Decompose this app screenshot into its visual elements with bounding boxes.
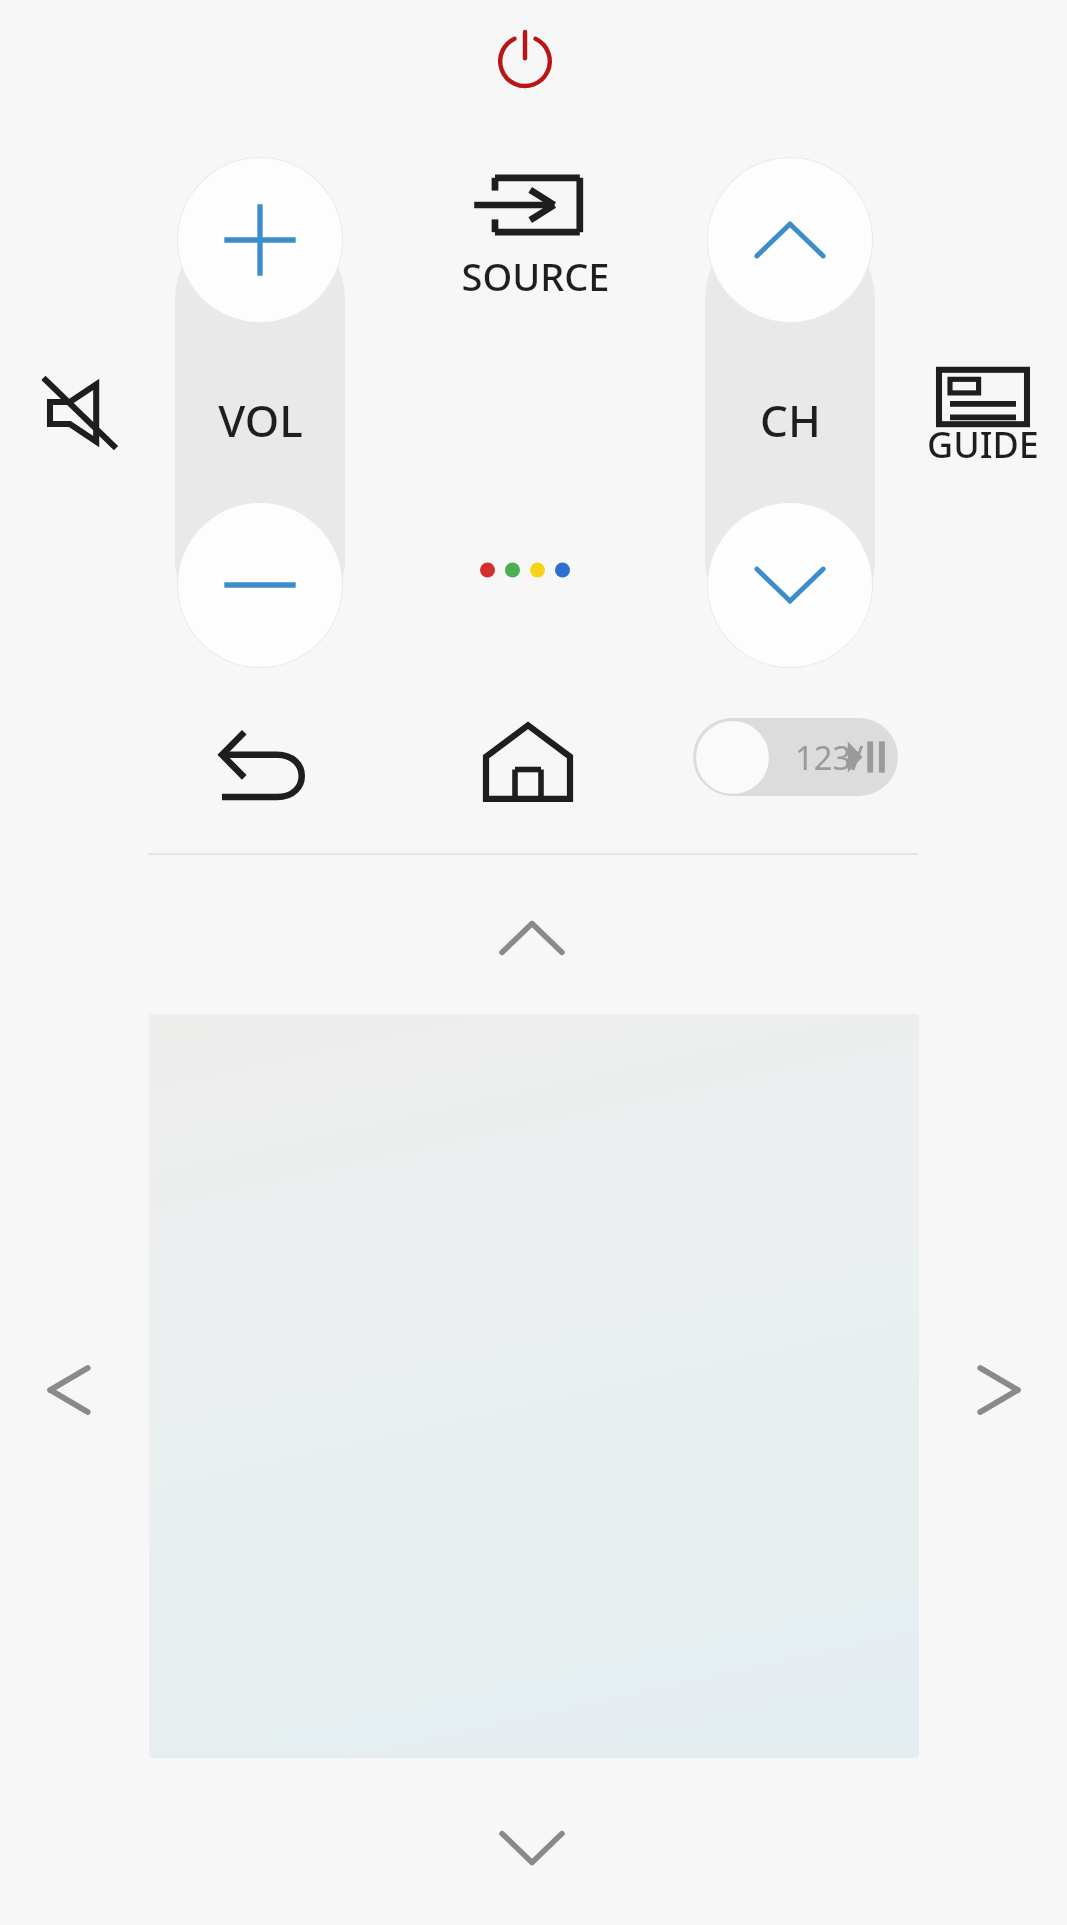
button[interactable]: Power: [465, 18, 585, 98]
button[interactable]: Guide: [928, 363, 1038, 431]
button[interactable]: Expand up: [482, 905, 582, 971]
button[interactable]: Channel up: [707, 157, 873, 323]
staticText: 123/: [795, 735, 864, 780]
staticText: CH: [760, 390, 821, 450]
staticText: VOL: [218, 390, 303, 450]
button[interactable]: Back: [215, 718, 315, 810]
button[interactable]: Channel down: [707, 502, 873, 668]
button[interactable]: Collapse down: [482, 1815, 582, 1881]
button[interactable]: Home: [478, 718, 578, 810]
button[interactable]: Volume down: [177, 502, 343, 668]
button[interactable]: Mute: [28, 358, 138, 468]
button[interactable]: Source: [455, 165, 615, 245]
button[interactable]: Colour buttons: [480, 555, 570, 585]
button[interactable]: Volume up: [177, 157, 343, 323]
staticText: GUIDE: [927, 420, 1039, 469]
button[interactable]: Next: [960, 1340, 1038, 1440]
button[interactable]: Previous: [30, 1340, 108, 1440]
staticText: SOURCE: [461, 250, 610, 302]
button[interactable]: Numeric and playback toggle: [693, 718, 898, 796]
